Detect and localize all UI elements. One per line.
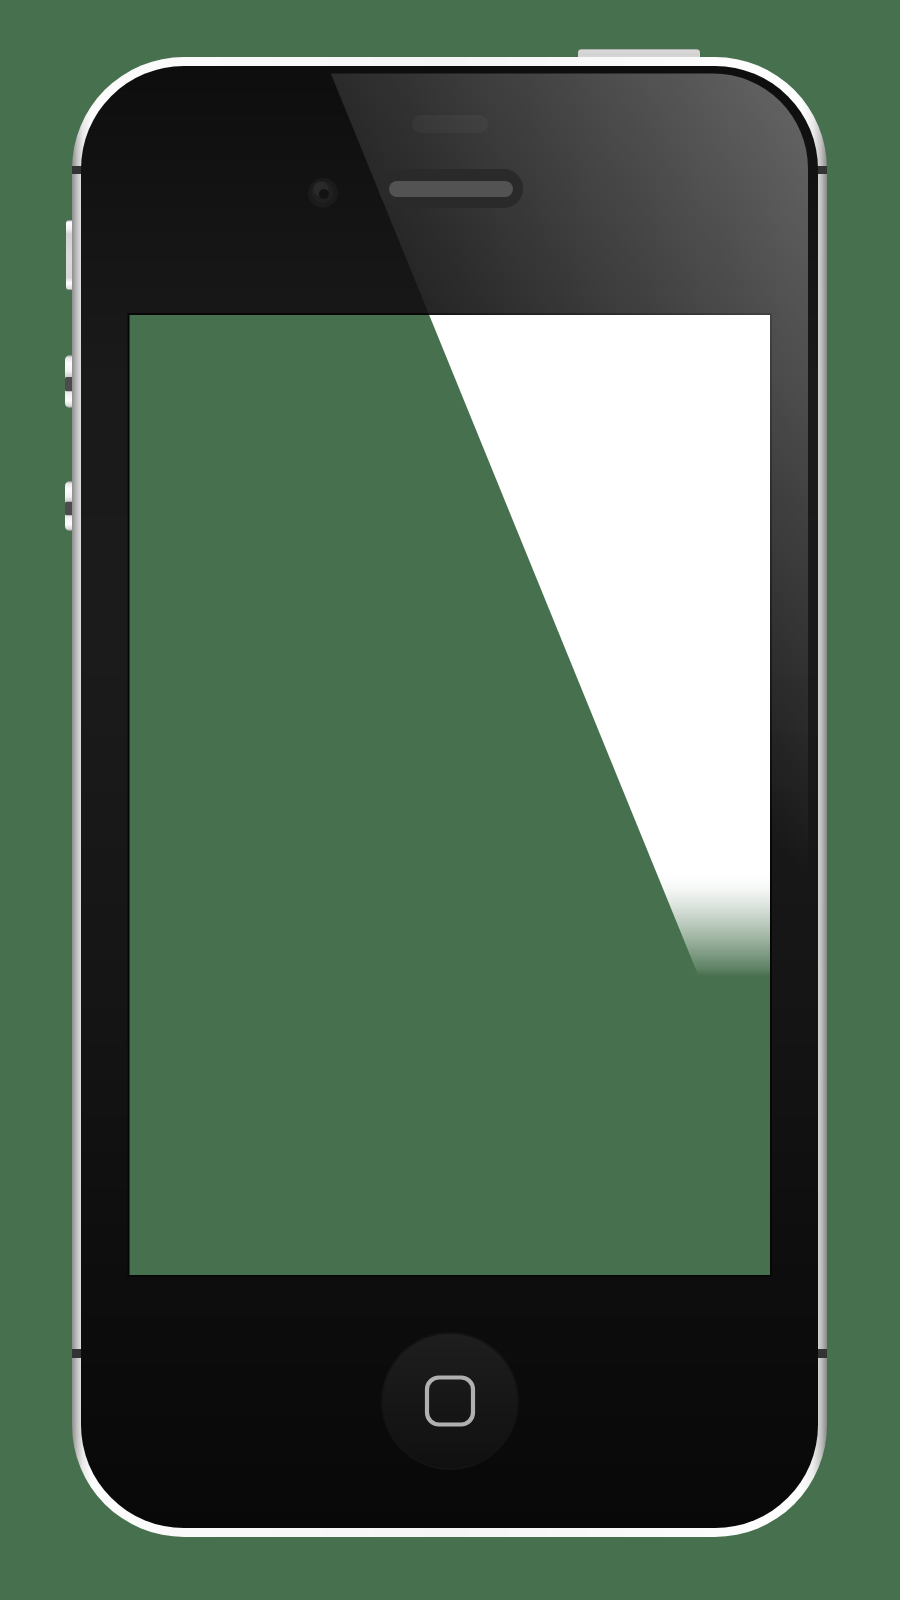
button[interactable]: iPhone device mockup xyxy=(0,0,900,1600)
